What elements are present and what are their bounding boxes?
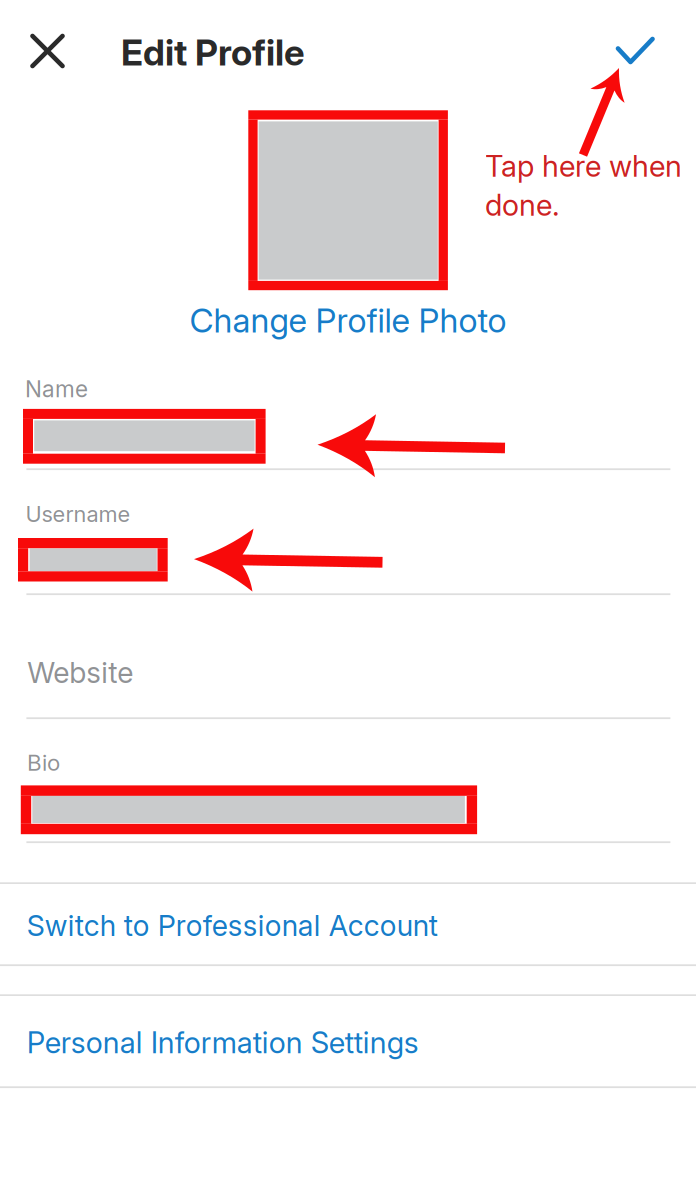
button[interactable]: Close — [11, 16, 84, 102]
staticText: Change Profile Photo — [189, 300, 506, 340]
staticText: Personal Information Settings — [27, 1025, 419, 1060]
staticText: Tap here when — [485, 148, 682, 184]
staticText: done. — [485, 187, 560, 223]
staticText: Edit Profile — [121, 31, 305, 74]
button[interactable]: Change Profile Photo — [246, 110, 576, 350]
staticText: Name — [25, 375, 88, 403]
staticText: Website — [27, 655, 133, 690]
button[interactable]: Switch to Professional Account — [0, 884, 696, 964]
staticText: Username — [25, 501, 130, 527]
button[interactable]: Personal Information Settings — [0, 996, 696, 1086]
staticText: Switch to Professional Account — [27, 908, 438, 943]
staticText: Bio — [27, 749, 60, 776]
button[interactable]: Done — [594, 14, 676, 102]
